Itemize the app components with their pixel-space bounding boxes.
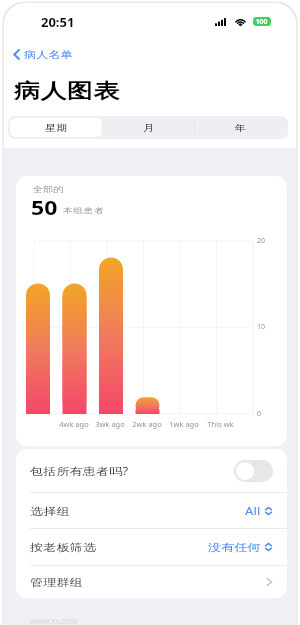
staticText: 没有任何 bbox=[208, 541, 261, 553]
staticText: 选择组 bbox=[30, 505, 70, 517]
staticText: 病人图表 bbox=[14, 79, 120, 104]
staticText: This wk bbox=[207, 419, 234, 429]
staticText: 按老板筛选 bbox=[30, 541, 96, 553]
button[interactable]: 年 bbox=[195, 118, 286, 137]
staticText: 病人名单 bbox=[24, 48, 73, 61]
staticText: WWW.XX.COM bbox=[30, 617, 77, 625]
staticText: 20:51 bbox=[41, 13, 75, 31]
staticText: 10 bbox=[257, 322, 266, 332]
button[interactable]: 管理群组 bbox=[16, 566, 287, 598]
staticText: 包括所有患者吗? bbox=[30, 464, 129, 478]
staticText: 全部的 bbox=[33, 184, 63, 195]
staticText: 100 bbox=[256, 17, 268, 26]
button[interactable]: 包括所有患者吗? bbox=[16, 449, 287, 492]
staticText: 本组患者 bbox=[63, 206, 105, 215]
button[interactable]: Toggle include all patients bbox=[234, 460, 273, 482]
staticText: 管理群组 bbox=[30, 576, 83, 588]
staticText: 50 bbox=[31, 194, 57, 221]
staticText: 1wk ago bbox=[169, 419, 199, 429]
staticText: 4wk ago bbox=[59, 419, 89, 429]
staticText: 3wk ago bbox=[95, 419, 125, 429]
staticText: 2wk ago bbox=[132, 419, 162, 429]
button[interactable]: 选择组 bbox=[16, 493, 287, 528]
staticText: All bbox=[245, 504, 261, 518]
staticText: 月 bbox=[143, 122, 154, 134]
button[interactable]: 按老板筛选 bbox=[16, 529, 287, 565]
button[interactable]: 病人名单 bbox=[12, 45, 73, 63]
button[interactable]: 月 bbox=[103, 118, 194, 137]
button[interactable]: 星期 bbox=[10, 118, 102, 137]
staticText: 星期 bbox=[45, 122, 67, 134]
staticText: 20 bbox=[257, 236, 266, 246]
staticText: 年 bbox=[235, 122, 246, 134]
staticText: 0 bbox=[257, 409, 262, 419]
